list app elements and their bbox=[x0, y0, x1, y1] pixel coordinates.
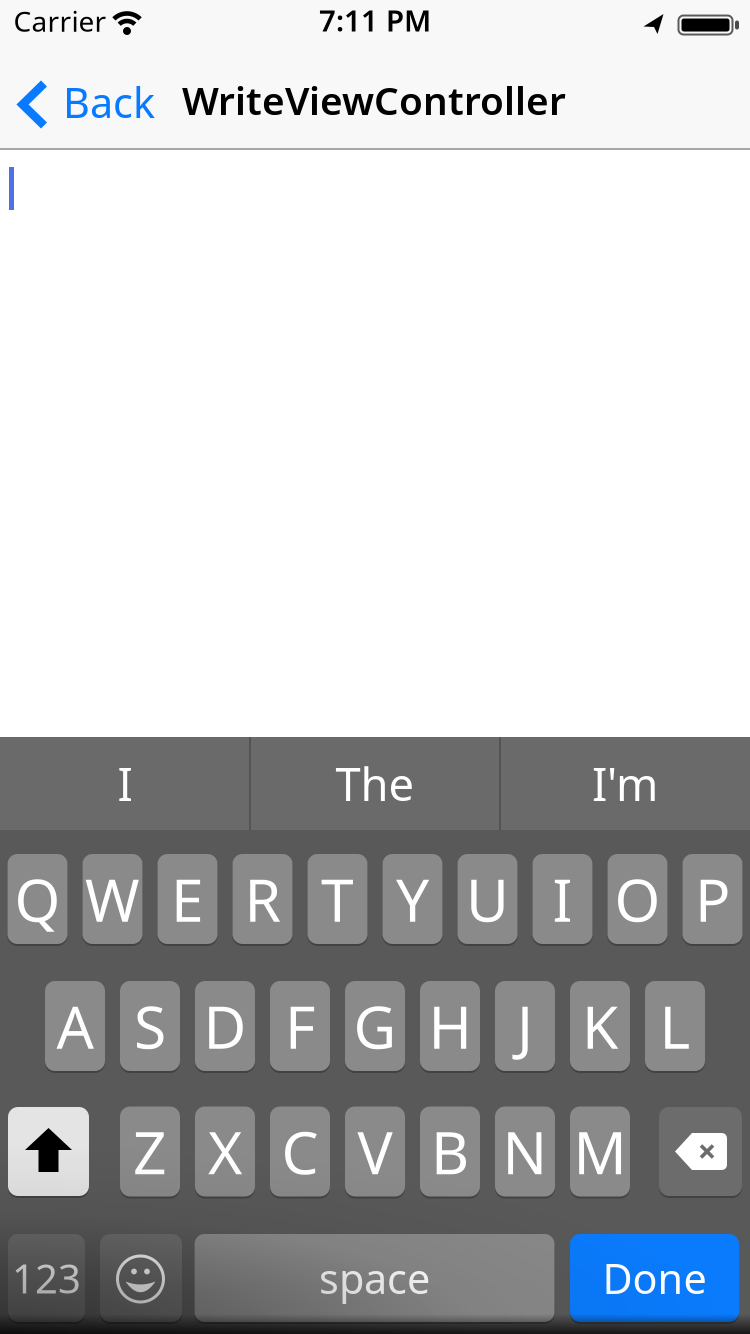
button[interactable]: L bbox=[645, 981, 705, 1071]
staticText: P bbox=[695, 860, 730, 938]
button[interactable]: I'm bbox=[502, 737, 748, 830]
staticText: X bbox=[208, 1112, 242, 1190]
staticText: space bbox=[319, 1251, 430, 1305]
staticText: C bbox=[281, 1112, 318, 1190]
staticText: 7:11 PM bbox=[319, 0, 431, 39]
button[interactable]: Delete bbox=[659, 1107, 742, 1196]
staticText: A bbox=[56, 987, 93, 1065]
staticText: E bbox=[171, 860, 204, 938]
button[interactable]: Back bbox=[0, 0, 170, 150]
button[interactable]: 123 bbox=[8, 1234, 85, 1322]
staticText: R bbox=[244, 860, 280, 938]
staticText: I bbox=[117, 753, 132, 814]
button[interactable]: Done bbox=[570, 1234, 739, 1322]
button[interactable]: K bbox=[570, 981, 630, 1071]
button[interactable]: I bbox=[2, 737, 248, 830]
button[interactable]: Q bbox=[7, 854, 67, 944]
button[interactable]: Shift bbox=[8, 1107, 89, 1196]
staticText: L bbox=[659, 987, 690, 1065]
button[interactable]: J bbox=[495, 981, 555, 1071]
button[interactable]: U bbox=[457, 854, 517, 944]
staticText: F bbox=[285, 987, 315, 1065]
button[interactable]: N bbox=[495, 1106, 555, 1196]
staticText: Y bbox=[396, 860, 429, 938]
button[interactable]: G bbox=[345, 981, 405, 1071]
staticText: I'm bbox=[592, 753, 658, 814]
staticText: G bbox=[353, 987, 396, 1065]
button[interactable]: D bbox=[195, 981, 255, 1071]
button[interactable]: V bbox=[345, 1106, 405, 1196]
button[interactable]: E bbox=[157, 854, 217, 944]
staticText: V bbox=[357, 1112, 392, 1190]
staticText: D bbox=[203, 987, 246, 1065]
staticText: Q bbox=[14, 860, 60, 938]
button[interactable]: Z bbox=[120, 1106, 180, 1196]
button[interactable]: The bbox=[252, 737, 498, 830]
button[interactable]: A bbox=[45, 981, 105, 1071]
staticText: K bbox=[582, 987, 618, 1065]
button[interactable]: W bbox=[82, 854, 142, 944]
staticText: M bbox=[573, 1112, 626, 1190]
staticText: Carrier bbox=[13, 2, 106, 40]
staticText: Z bbox=[133, 1112, 167, 1190]
button[interactable]: T bbox=[307, 854, 367, 944]
staticText: 123 bbox=[12, 1251, 81, 1304]
staticText: S bbox=[134, 987, 166, 1065]
staticText: WriteViewController bbox=[182, 74, 566, 126]
staticText: T bbox=[321, 860, 354, 938]
button[interactable]: F bbox=[270, 981, 330, 1071]
button[interactable]: P bbox=[682, 854, 742, 944]
staticText: N bbox=[502, 1112, 547, 1190]
button[interactable]: M bbox=[570, 1106, 630, 1196]
button[interactable]: O bbox=[607, 854, 667, 944]
staticText: J bbox=[517, 987, 533, 1065]
staticText: I bbox=[552, 860, 572, 938]
staticText: Back bbox=[63, 75, 155, 129]
staticText: Done bbox=[602, 1251, 706, 1305]
button[interactable]: B bbox=[420, 1106, 480, 1196]
staticText: W bbox=[85, 860, 140, 938]
button[interactable]: Emoji bbox=[100, 1234, 182, 1322]
staticText: The bbox=[335, 753, 414, 814]
button[interactable]: C bbox=[270, 1106, 330, 1196]
button[interactable]: H bbox=[420, 981, 480, 1071]
staticText: B bbox=[431, 1112, 469, 1190]
button[interactable]: S bbox=[120, 981, 180, 1071]
button[interactable]: I bbox=[532, 854, 592, 944]
staticText: U bbox=[466, 860, 509, 938]
staticText: H bbox=[428, 987, 471, 1065]
staticText: O bbox=[614, 860, 660, 938]
button[interactable]: X bbox=[195, 1106, 255, 1196]
button[interactable]: space bbox=[194, 1234, 554, 1322]
button[interactable]: R bbox=[232, 854, 292, 944]
button[interactable]: Y bbox=[382, 854, 442, 944]
